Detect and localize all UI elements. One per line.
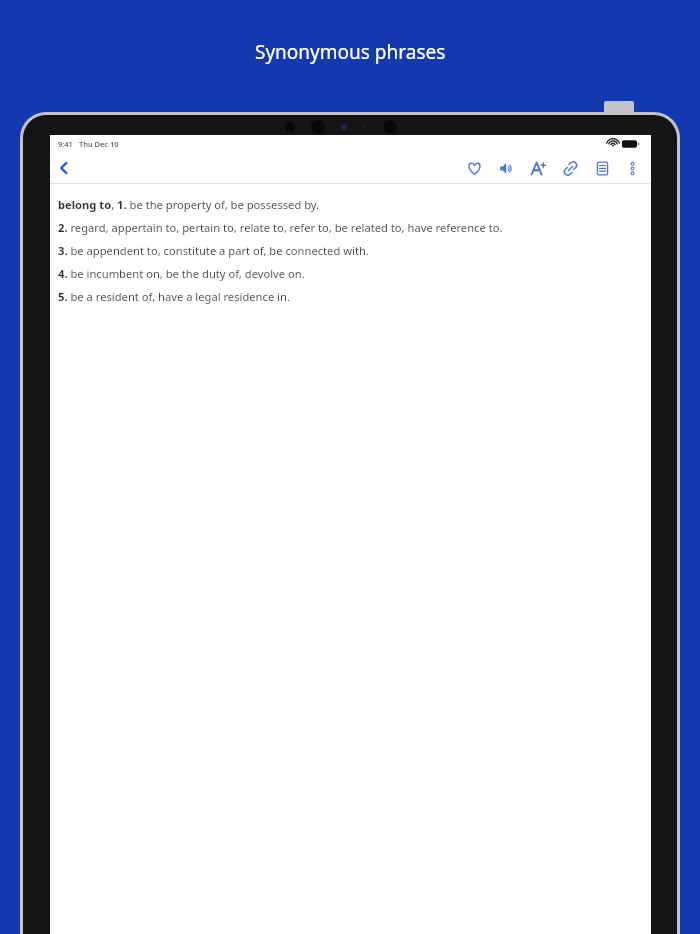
button[interactable]: Back	[52, 156, 76, 180]
staticText: Synonymous phrases	[255, 39, 446, 65]
staticText: 5. be a resident of, have a legal reside…	[58, 289, 290, 304]
button[interactable]: Text size	[527, 157, 549, 179]
button[interactable]: Link	[559, 157, 581, 179]
button[interactable]: More options	[621, 157, 643, 179]
button[interactable]: Notes	[591, 157, 613, 179]
staticText: 3. be appendent to, constitute a part of…	[58, 243, 369, 258]
button[interactable]: Pronounce	[495, 157, 517, 179]
staticText: Thu Dec 10	[79, 139, 119, 149]
button[interactable]: Favorite	[463, 157, 485, 179]
staticText: 4. be incumbent on, be the duty of, devo…	[58, 266, 305, 281]
staticText: 2. regard, appertain to, pertain to, rel…	[58, 220, 503, 235]
staticText: belong to, 1. be the property of, be pos…	[58, 197, 320, 212]
staticText: 9:41	[58, 139, 73, 149]
